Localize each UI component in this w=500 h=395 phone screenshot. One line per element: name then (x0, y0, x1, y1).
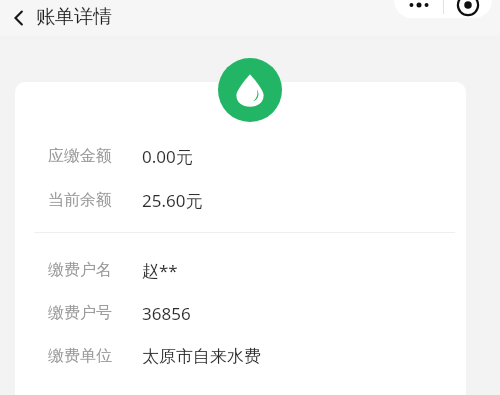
button[interactable]: Close (444, 0, 492, 18)
button[interactable]: 当前余额 (15, 187, 466, 213)
staticText: 应缴金额 (48, 146, 112, 166)
button[interactable]: 应缴金额 (15, 143, 466, 169)
button[interactable]: 缴费户号 (15, 300, 466, 326)
staticText: 缴费单位 (48, 346, 112, 366)
staticText: 25.60元 (142, 189, 203, 212)
staticText: 太原市自来水费 (142, 346, 261, 367)
button[interactable]: 缴费单位 (15, 343, 466, 369)
staticText: 36856 (142, 302, 191, 325)
staticText: 缴费户号 (48, 303, 112, 323)
button[interactable]: Back (2, 1, 36, 35)
staticText: 缴费户名 (48, 260, 112, 280)
button[interactable]: Water utility (218, 58, 282, 122)
button[interactable]: 缴费户名 (15, 257, 466, 283)
staticText: 赵** (142, 259, 178, 282)
staticText: 当前余额 (48, 190, 112, 210)
button[interactable]: More options (394, 0, 443, 18)
staticText: 账单详情 (36, 5, 112, 29)
staticText: 0.00元 (142, 145, 193, 168)
